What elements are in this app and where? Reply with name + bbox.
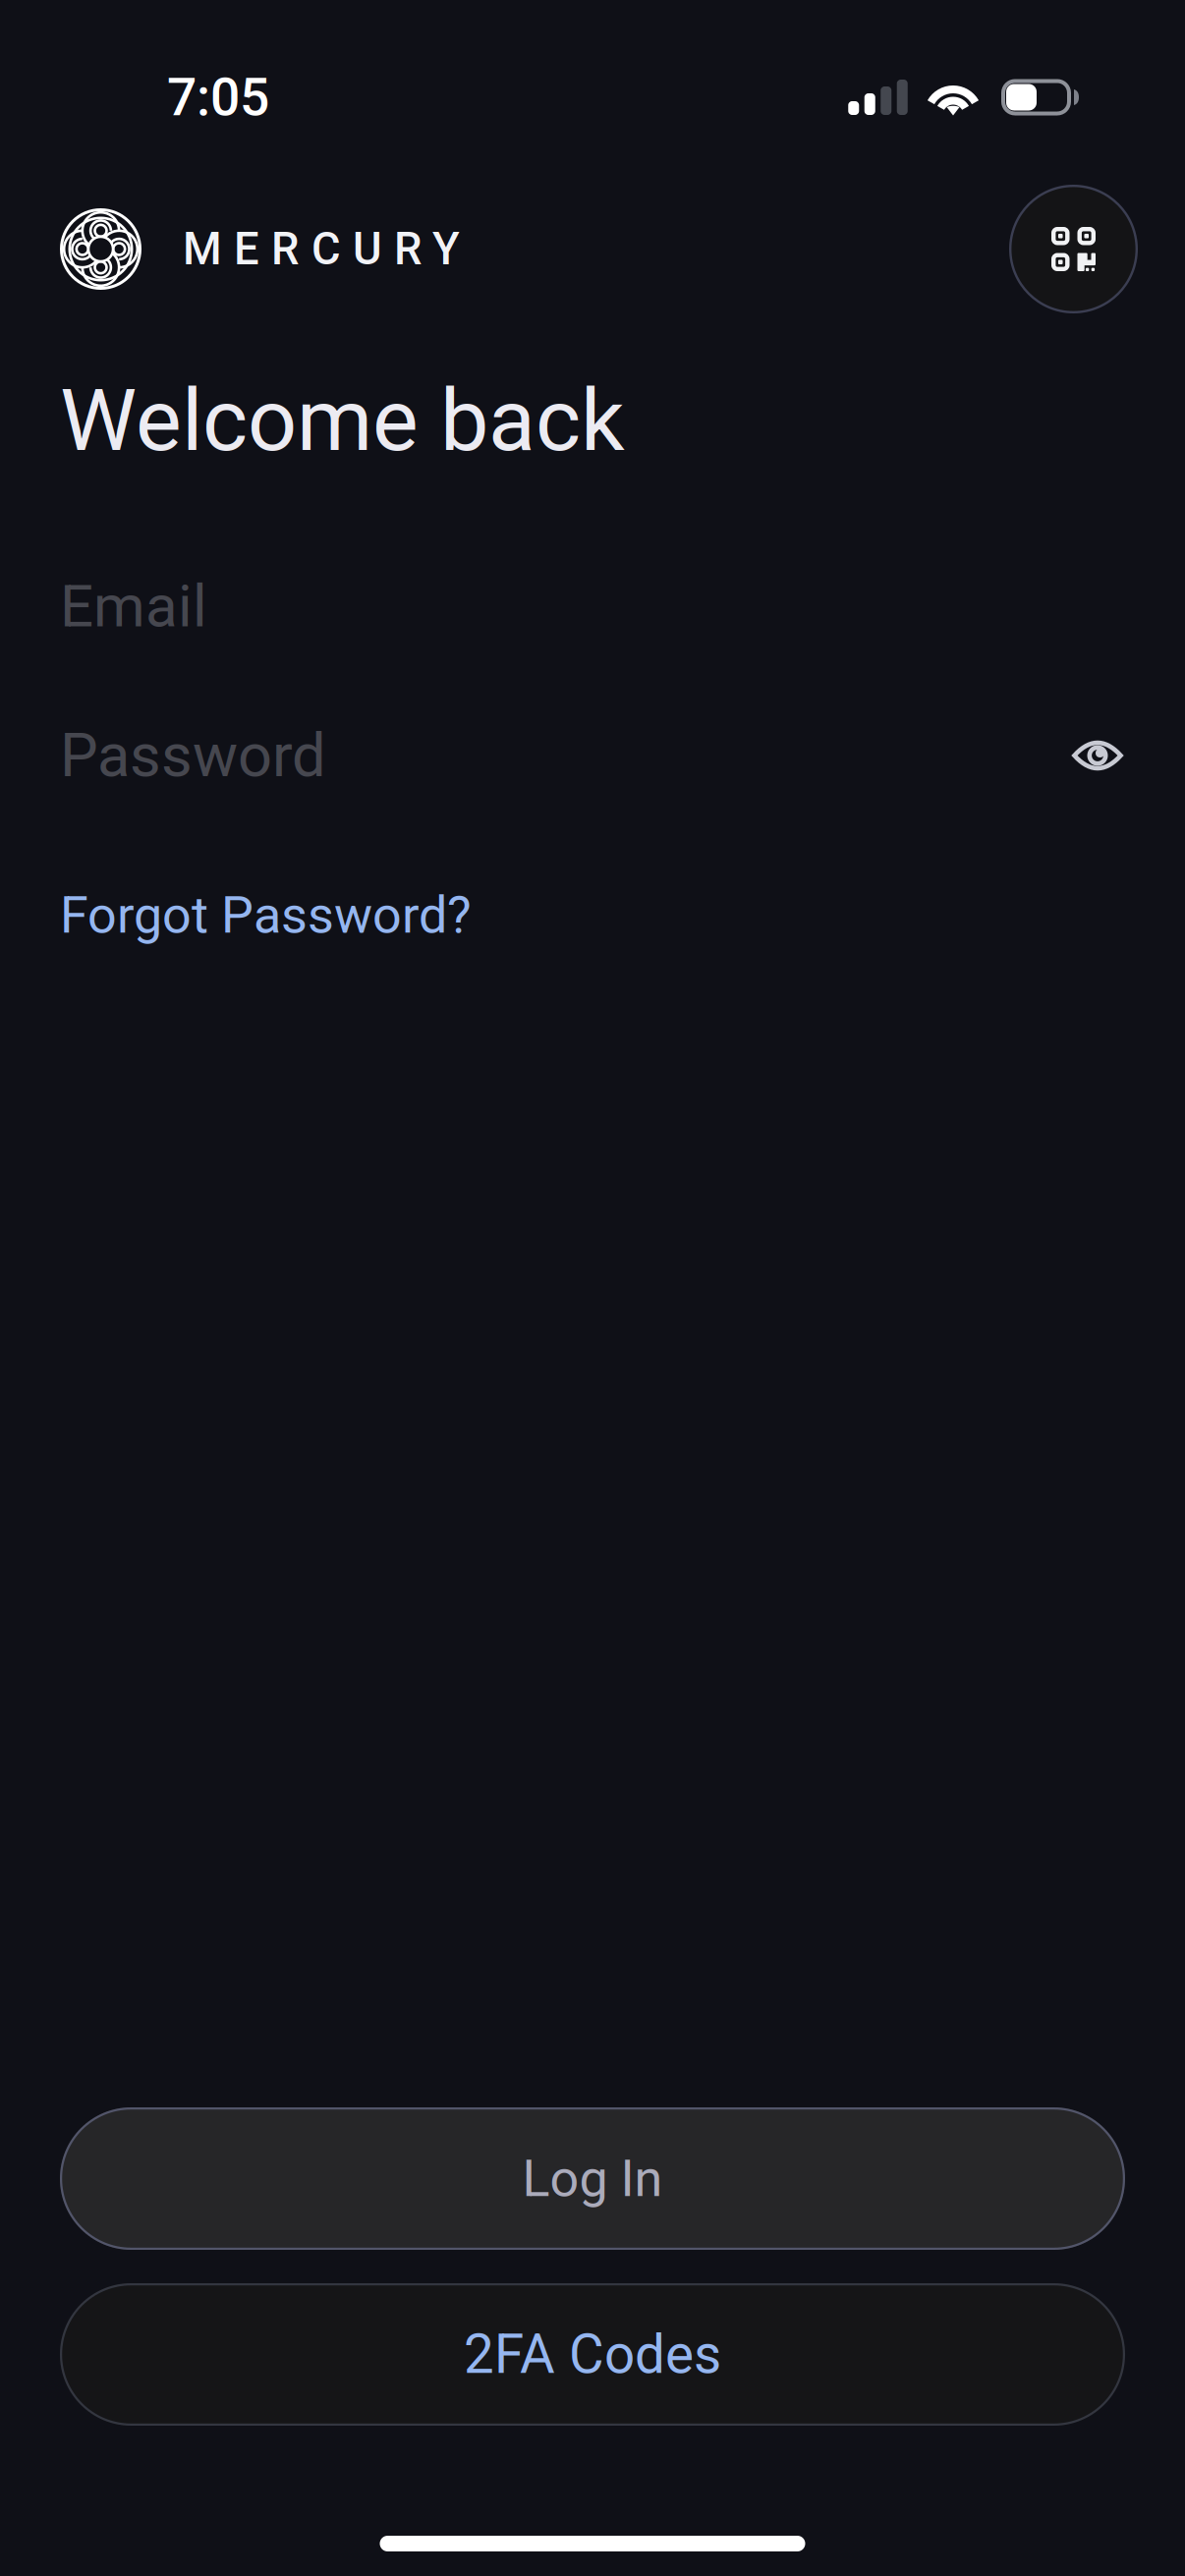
button[interactable]: 2FA Codes: [60, 2283, 1125, 2426]
button[interactable]: Email: [0, 559, 1185, 653]
staticText: Password: [60, 720, 326, 791]
button[interactable]: Password: [60, 720, 326, 791]
staticText: Forgot Password?: [60, 885, 472, 945]
button[interactable]: Forgot Password?: [60, 875, 472, 955]
staticText: Email: [60, 572, 207, 641]
button[interactable]: Show password: [1058, 721, 1137, 790]
staticText: MERCURY: [183, 223, 460, 275]
button[interactable]: Log In: [60, 2107, 1125, 2250]
staticText: 7:05: [167, 67, 269, 128]
staticText: 2FA Codes: [464, 2323, 721, 2386]
button[interactable]: Scan QR code to sign in: [1009, 185, 1138, 313]
staticText: Log In: [522, 2149, 663, 2208]
staticText: Welcome back: [60, 370, 625, 471]
